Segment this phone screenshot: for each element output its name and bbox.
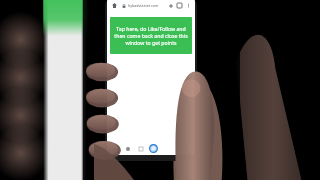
- button[interactable]: Recents: [136, 144, 145, 153]
- button[interactable]: Tabs: [175, 1, 184, 10]
- button[interactable]: Home: [110, 1, 119, 10]
- button[interactable]: Tap here, do Like/Follow and then come b…: [110, 17, 192, 54]
- button[interactable]: Home: [123, 144, 132, 153]
- button[interactable]: More options: [184, 1, 192, 9]
- staticText: hybadvtainet.com: [128, 3, 159, 8]
- staticText: Tap here, do Like/Follow and then come b…: [113, 25, 189, 46]
- button[interactable]: Back: [110, 144, 119, 153]
- button[interactable]: Menu: [183, 144, 192, 153]
- button[interactable]: Tap indicator: [148, 143, 159, 154]
- button[interactable]: hybadvtainet.com: [122, 3, 166, 8]
- button[interactable]: Zoom: [166, 1, 175, 10]
